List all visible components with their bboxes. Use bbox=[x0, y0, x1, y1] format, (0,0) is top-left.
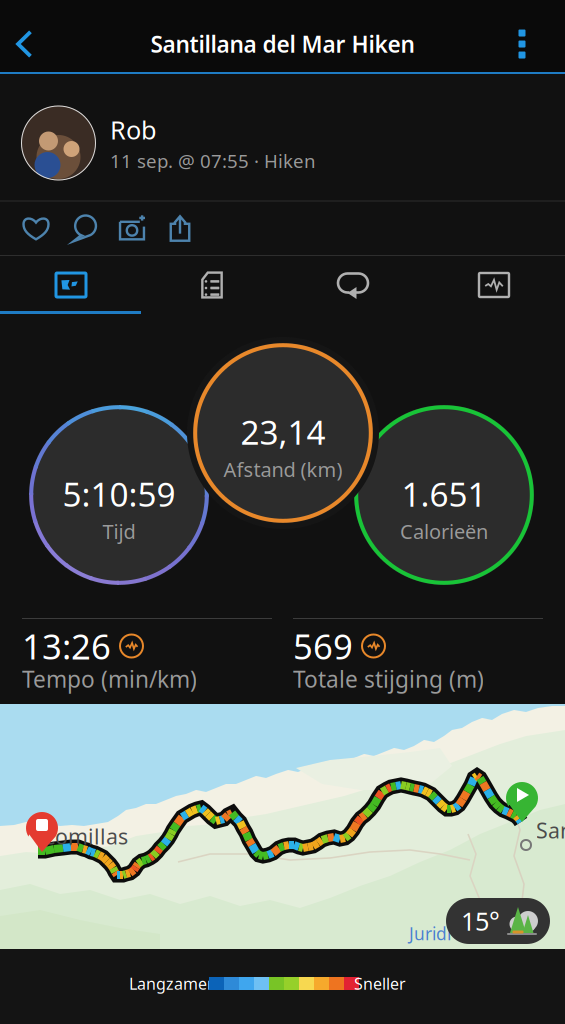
staticText: Santillana del Mar Hiken bbox=[150, 29, 414, 59]
staticText: 13:26 bbox=[22, 623, 111, 669]
button[interactable]: Share bbox=[156, 201, 204, 255]
button[interactable]: More options bbox=[479, 8, 565, 80]
staticText: Tijd bbox=[102, 518, 135, 544]
button[interactable]: Details bbox=[141, 256, 282, 314]
staticText: San bbox=[536, 816, 565, 844]
staticText: Sneller bbox=[354, 973, 406, 994]
button[interactable]: Back bbox=[0, 8, 49, 80]
staticText: 569 bbox=[293, 623, 353, 669]
button[interactable]: Add photo bbox=[108, 201, 156, 255]
button[interactable]: Laps bbox=[282, 256, 423, 314]
staticText: 15° bbox=[461, 904, 500, 938]
staticText: Totale stijging (m) bbox=[293, 664, 484, 694]
button[interactable]: Map bbox=[0, 256, 141, 314]
staticText: 11 sep. @ 07:55 · Hiken bbox=[110, 148, 316, 173]
button[interactable]: Comment bbox=[60, 201, 108, 255]
staticText: 1.651 bbox=[401, 472, 486, 516]
staticText: Juridi bbox=[409, 922, 451, 945]
button[interactable]: Charts bbox=[423, 256, 564, 314]
staticText: Rob bbox=[110, 113, 157, 146]
staticText: Langzamer bbox=[129, 973, 214, 994]
staticText: 23,14 bbox=[240, 410, 325, 454]
staticText: Comillas bbox=[42, 822, 128, 850]
staticText: 5:10:59 bbox=[62, 472, 175, 516]
staticText: Tempo (min/km) bbox=[22, 664, 197, 694]
button[interactable]: Like bbox=[12, 201, 60, 255]
staticText: Afstand (km) bbox=[223, 456, 342, 482]
staticText: Calorieën bbox=[400, 518, 488, 544]
